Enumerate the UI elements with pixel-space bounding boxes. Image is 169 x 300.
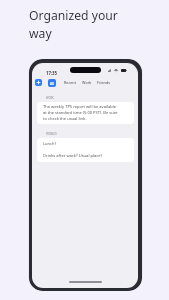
button[interactable]: Work bbox=[82, 78, 92, 87]
button[interactable]: Lunch? bbox=[37, 138, 134, 150]
staticText: Lunch? bbox=[43, 141, 57, 147]
button[interactable]: New conversation bbox=[35, 79, 42, 86]
button[interactable]: All bbox=[48, 79, 56, 87]
staticText: Work bbox=[82, 80, 92, 85]
staticText: The weekly TPS report will be available … bbox=[43, 104, 118, 122]
staticText: WORK bbox=[46, 96, 54, 100]
button[interactable]: Friends bbox=[97, 78, 111, 87]
staticText: 17:35 bbox=[46, 70, 58, 76]
staticText: Friends bbox=[97, 80, 111, 85]
staticText: FRIENDS bbox=[46, 132, 57, 136]
button[interactable]: Recent bbox=[64, 78, 77, 87]
button[interactable]: The weekly TPS report will be available … bbox=[37, 102, 134, 124]
staticText: Drinks after work? Usual place? bbox=[43, 153, 103, 159]
button[interactable]: Drinks after work? Usual place? bbox=[37, 150, 134, 162]
staticText: All bbox=[50, 81, 55, 86]
staticText: Organized your way bbox=[29, 7, 129, 42]
staticText: Recent bbox=[64, 80, 77, 85]
